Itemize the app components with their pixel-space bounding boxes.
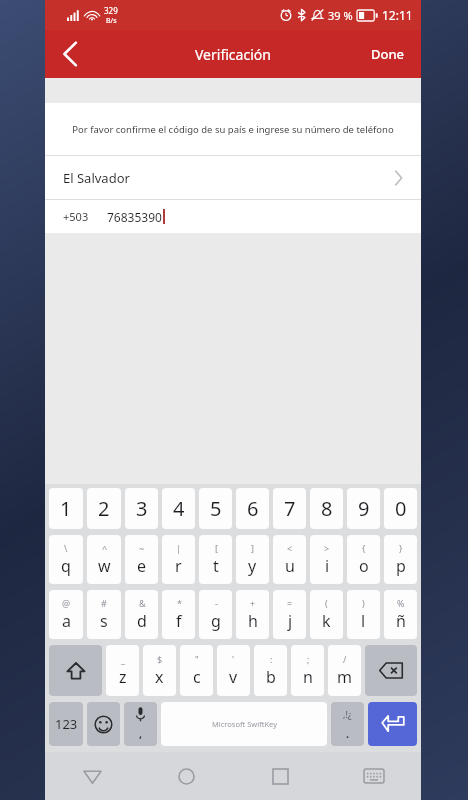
staticText: [: [215, 542, 218, 554]
staticText: j: [288, 610, 293, 632]
button[interactable]: 5: [199, 488, 232, 529]
button[interactable]: +: [236, 590, 269, 639]
button[interactable]: $: [143, 645, 176, 696]
button[interactable]: +503: [45, 200, 421, 233]
staticText: 6: [247, 495, 259, 522]
staticText: u: [285, 555, 295, 577]
button[interactable]: /: [328, 645, 361, 696]
button[interactable]: Backspace: [365, 645, 417, 696]
button[interactable]: Voice input: [124, 702, 157, 746]
button[interactable]: 8: [310, 488, 343, 529]
staticText: f: [176, 610, 182, 632]
button[interactable]: 123: [49, 702, 83, 746]
staticText: #: [101, 597, 107, 609]
button[interactable]: [: [199, 535, 232, 584]
staticText: a: [62, 610, 71, 632]
button[interactable]: ~: [125, 535, 158, 584]
button[interactable]: ): [347, 590, 380, 639]
staticText: b: [266, 666, 276, 688]
staticText: 9: [358, 495, 370, 522]
staticText: ]: [251, 542, 254, 554]
button[interactable]: 4: [162, 488, 195, 529]
button[interactable]: Recent apps: [233, 752, 327, 800]
staticText: |: [176, 542, 181, 554]
staticText: <: [287, 542, 293, 554]
button[interactable]: ": [180, 645, 213, 696]
button[interactable]: Shift: [49, 645, 102, 696]
staticText: (: [325, 597, 328, 609]
button[interactable]: #: [87, 590, 121, 639]
staticText: ~: [139, 542, 145, 554]
button[interactable]: Emoji: [87, 702, 120, 746]
staticText: Done: [371, 45, 405, 63]
staticText: $: [157, 653, 163, 665]
staticText: y: [248, 555, 257, 577]
button[interactable]: \: [49, 535, 83, 584]
staticText: @: [62, 597, 71, 609]
staticText: m: [337, 666, 352, 688]
staticText: 0: [395, 495, 407, 522]
button[interactable]: 3: [125, 488, 158, 529]
button[interactable]: 0: [384, 488, 417, 529]
staticText: \: [64, 542, 68, 554]
button[interactable]: 2: [87, 488, 121, 529]
button[interactable]: %: [384, 590, 417, 639]
button[interactable]: Punctuation: [331, 702, 364, 746]
staticText: p: [396, 555, 406, 577]
staticText: &: [139, 597, 146, 609]
staticText: d: [137, 610, 147, 632]
button[interactable]: *: [162, 590, 195, 639]
staticText: +503: [63, 209, 89, 224]
button[interactable]: (: [310, 590, 343, 639]
staticText: 329: [104, 5, 118, 16]
button[interactable]: ]: [236, 535, 269, 584]
button[interactable]: Space: [161, 702, 327, 746]
staticText: ): [362, 597, 365, 609]
staticText: 123: [55, 715, 78, 733]
staticText: ,: [139, 726, 143, 741]
button[interactable]: Back: [45, 752, 139, 800]
button[interactable]: El Salvador: [45, 156, 421, 199]
button[interactable]: 7: [273, 488, 306, 529]
button[interactable]: 6: [236, 488, 269, 529]
button[interactable]: Done: [355, 30, 421, 78]
staticText: ;: [307, 653, 310, 665]
button[interactable]: 9: [347, 488, 380, 529]
staticText: Por favor confirme el código de su país …: [72, 123, 394, 136]
button[interactable]: >: [310, 535, 343, 584]
button[interactable]: {: [347, 535, 380, 584]
staticText: x: [155, 666, 164, 688]
button[interactable]: :: [254, 645, 287, 696]
staticText: ^: [102, 542, 108, 554]
staticText: 4: [173, 495, 185, 522]
staticText: ': [232, 653, 235, 665]
button[interactable]: 1: [49, 488, 83, 529]
button[interactable]: Enter: [368, 702, 417, 746]
staticText: 12:11: [382, 7, 413, 23]
button[interactable]: @: [49, 590, 83, 639]
button[interactable]: <: [273, 535, 306, 584]
staticText: _: [121, 653, 125, 665]
staticText: n: [303, 666, 313, 688]
staticText: t: [213, 555, 219, 577]
button[interactable]: &: [125, 590, 158, 639]
button[interactable]: ^: [87, 535, 121, 584]
button[interactable]: ': [217, 645, 250, 696]
staticText: q: [61, 555, 71, 577]
staticText: =: [287, 597, 293, 609]
button[interactable]: Back: [45, 30, 95, 78]
staticText: >: [324, 542, 330, 554]
staticText: Verificación: [195, 45, 271, 64]
button[interactable]: _: [106, 645, 139, 696]
button[interactable]: ;: [291, 645, 324, 696]
button[interactable]: |: [162, 535, 195, 584]
button[interactable]: -: [199, 590, 232, 639]
staticText: 2: [98, 495, 110, 522]
staticText: h: [248, 610, 258, 632]
button[interactable]: =: [273, 590, 306, 639]
staticText: 5: [210, 495, 222, 522]
button[interactable]: Home: [139, 752, 233, 800]
staticText: +: [250, 597, 256, 609]
button[interactable]: }: [384, 535, 417, 584]
button[interactable]: Hide keyboard: [327, 752, 421, 800]
